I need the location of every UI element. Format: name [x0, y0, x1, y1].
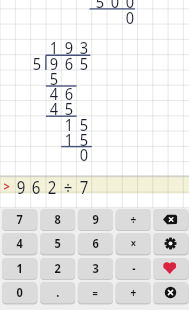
staticText: 8 — [54, 211, 61, 228]
button[interactable]: × — [116, 233, 151, 254]
button[interactable]: 0 — [2, 282, 37, 303]
staticText: 1 — [50, 36, 58, 58]
button[interactable]: . — [40, 282, 75, 303]
staticText: 5 — [80, 113, 88, 135]
staticText: 3 — [80, 36, 88, 58]
staticText: 5 — [65, 97, 73, 119]
staticText: 2 — [48, 175, 57, 197]
staticText: 5 — [80, 128, 88, 150]
staticText: 6 — [65, 52, 73, 74]
staticText: 6 — [92, 235, 99, 252]
staticText: 6 — [32, 175, 41, 197]
button[interactable]: 4 — [2, 233, 37, 254]
button[interactable] — [153, 258, 188, 279]
button[interactable]: - — [116, 258, 151, 279]
button[interactable]: 1 — [2, 258, 37, 279]
button[interactable]: 5 — [40, 233, 75, 254]
staticText: ÷ — [64, 175, 73, 197]
staticText: 7 — [16, 211, 23, 228]
button[interactable] — [153, 209, 188, 230]
staticText: 4 — [50, 82, 58, 104]
button[interactable]: 6 — [78, 233, 113, 254]
staticText: 5 — [80, 52, 88, 74]
staticText: 6 — [65, 82, 73, 104]
button[interactable]: = — [78, 282, 113, 303]
button[interactable] — [153, 282, 188, 303]
staticText: 9 — [17, 175, 26, 197]
button[interactable]: ÷ — [116, 209, 151, 230]
staticText: 5 — [96, 0, 104, 12]
staticText: 9 — [50, 52, 58, 74]
button[interactable]: 3 — [78, 258, 113, 279]
staticText: 4 — [16, 235, 23, 252]
staticText: 9 — [65, 36, 73, 58]
staticText: 1 — [65, 113, 73, 135]
staticText: = — [92, 286, 99, 300]
staticText: 7 — [80, 175, 89, 197]
staticText: 1 — [65, 128, 73, 150]
staticText: . — [56, 284, 60, 301]
staticText: 5 — [33, 52, 41, 74]
staticText: 2 — [54, 260, 61, 277]
button[interactable]: 9 — [78, 209, 113, 230]
staticText: 5 — [54, 235, 61, 252]
staticText: 3 — [92, 260, 99, 277]
staticText: 0 — [126, 6, 134, 28]
staticText: 1 — [16, 260, 23, 277]
staticText: 0 — [80, 143, 88, 165]
staticText: 5 — [50, 67, 58, 89]
staticText: - — [132, 261, 136, 277]
button[interactable]: + — [116, 282, 151, 303]
staticText: 0 — [16, 284, 23, 301]
staticText: + — [130, 285, 137, 301]
staticText: ÷ — [130, 212, 137, 228]
staticText: 0 — [111, 0, 119, 12]
staticText: > — [4, 177, 10, 195]
button[interactable]: 7 — [2, 209, 37, 230]
staticText: × — [130, 236, 137, 252]
staticText: 0 — [126, 0, 134, 12]
staticText: 9 — [92, 211, 99, 228]
button[interactable]: 8 — [40, 209, 75, 230]
button[interactable] — [153, 233, 188, 254]
staticText: 4 — [50, 97, 58, 119]
button[interactable]: 2 — [40, 258, 75, 279]
